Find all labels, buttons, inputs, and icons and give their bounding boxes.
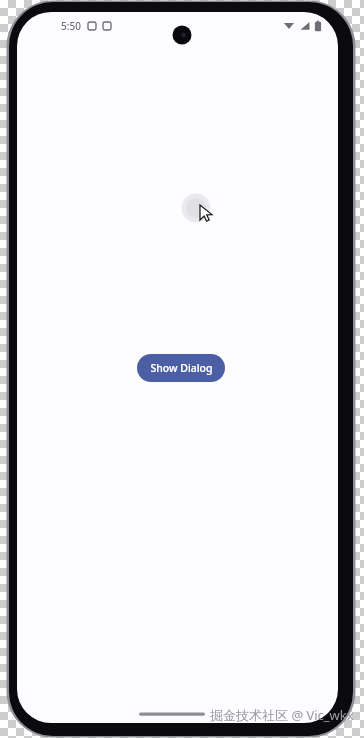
staticText: 掘金技术社区 @ Vic_wkx: [210, 706, 354, 724]
button[interactable]: Show Dialog: [137, 354, 225, 382]
staticText: 5:50: [61, 19, 81, 33]
other: Pointer: [0, 0, 364, 738]
staticText: Show Dialog: [150, 361, 213, 375]
